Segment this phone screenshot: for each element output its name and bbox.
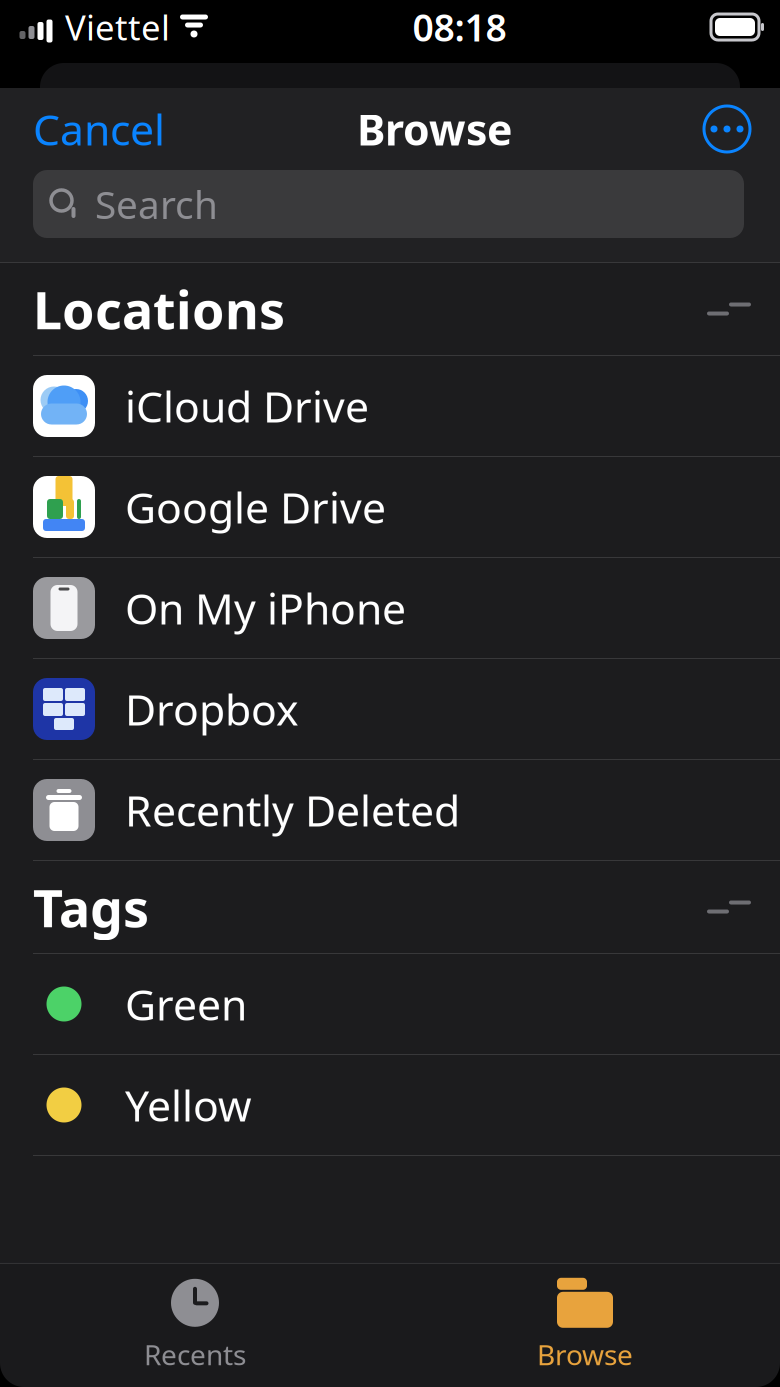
staticText: Google Drive	[125, 479, 386, 535]
staticText: Dropbox	[125, 681, 299, 737]
button[interactable]: Browse	[390, 1264, 780, 1387]
staticText: Cancel	[33, 101, 165, 157]
staticText: Locations	[33, 274, 285, 344]
staticText: iCloud Drive	[125, 378, 369, 434]
button[interactable]: On My iPhone	[0, 558, 780, 659]
button[interactable]: Cancel	[0, 89, 177, 169]
button[interactable]: Search	[33, 170, 744, 238]
button[interactable]: iCloud Drive	[0, 356, 780, 457]
button[interactable]: Dropbox	[0, 659, 780, 760]
staticText: Yellow	[125, 1077, 252, 1133]
staticText: Search	[95, 178, 218, 230]
staticText: Viettel	[65, 4, 170, 50]
staticText: Browse	[357, 101, 512, 157]
button[interactable]: Recently Deleted	[0, 760, 780, 861]
staticText: 08:18	[412, 2, 506, 52]
staticText: On My iPhone	[125, 580, 406, 636]
staticText: Recently Deleted	[125, 782, 460, 838]
button[interactable]: Collapse Tags	[704, 882, 754, 932]
button[interactable]: Yellow	[0, 1055, 780, 1156]
button[interactable]: Recents	[0, 1264, 390, 1387]
staticText: Recents	[144, 1336, 246, 1373]
button[interactable]: Green	[0, 954, 780, 1055]
staticText: Browse	[537, 1336, 633, 1373]
button[interactable]: Google Drive	[0, 457, 780, 558]
button[interactable]: Collapse Locations	[704, 284, 754, 334]
staticText: Green	[125, 976, 247, 1032]
button[interactable]: More options	[692, 98, 780, 160]
staticText: Tags	[33, 872, 149, 942]
